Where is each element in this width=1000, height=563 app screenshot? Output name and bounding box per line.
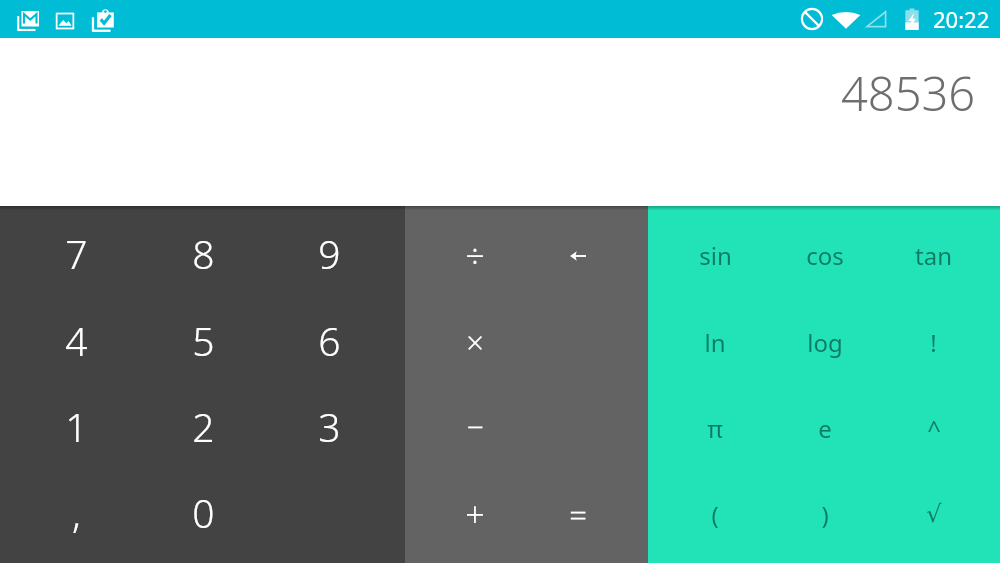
staticText: 9 (318, 227, 341, 280)
button[interactable]: , (13, 469, 140, 555)
button[interactable]: − (424, 383, 526, 469)
other: Gmail notification (16, 8, 41, 33)
button[interactable]: ÷ (424, 212, 526, 299)
button[interactable]: ln (660, 299, 770, 385)
staticText: 4 (65, 314, 88, 367)
staticText: 6 (318, 314, 341, 367)
button[interactable]: sin (660, 212, 770, 299)
staticText: = (569, 493, 587, 535)
staticText: cos (806, 239, 844, 272)
staticText: 3 (318, 400, 341, 453)
staticText: ! (930, 326, 937, 359)
button[interactable]: ^ (879, 385, 988, 471)
staticText: − (466, 406, 484, 447)
button[interactable]: 1 (13, 383, 140, 469)
button[interactable]: 5 (140, 297, 266, 383)
button[interactable]: × (424, 299, 526, 385)
staticText: √ (926, 500, 942, 528)
staticText: sin (699, 239, 732, 272)
other: Battery charging (903, 7, 921, 32)
staticText: ) (821, 498, 829, 531)
staticText: ^ (927, 412, 941, 445)
button[interactable]: 7 (13, 210, 140, 297)
staticText: π (707, 412, 723, 445)
staticText: ln (704, 326, 726, 359)
other: Photos notification (54, 10, 76, 32)
button[interactable]: 8 (140, 210, 266, 297)
staticText: 5 (192, 314, 215, 367)
staticText: ÷ (465, 233, 485, 279)
staticText: tan (915, 239, 952, 272)
staticText: , (72, 486, 81, 539)
staticText: 1 (65, 400, 88, 453)
staticText: 8 (192, 227, 215, 280)
button[interactable]: Backspace (526, 212, 629, 299)
other: Tasks notification (90, 7, 117, 34)
staticText: e (818, 412, 832, 445)
other: Do not disturb (800, 7, 824, 31)
other: Mobile signal (864, 7, 888, 31)
button[interactable]: log (770, 299, 879, 385)
button[interactable]: tan (879, 212, 988, 299)
button[interactable]: π (660, 385, 770, 471)
button[interactable]: ( (660, 471, 770, 557)
button[interactable]: ) (770, 471, 879, 557)
staticText: 20:22 (933, 4, 990, 34)
button[interactable]: e (770, 385, 879, 471)
button[interactable]: 2 (140, 383, 266, 469)
staticText: 0 (192, 486, 215, 539)
staticText: log (807, 326, 843, 359)
button[interactable]: = (526, 471, 629, 557)
button[interactable]: 9 (266, 210, 392, 297)
staticText: 48536 (841, 61, 976, 125)
staticText: ( (711, 498, 719, 531)
other: Wi-Fi (831, 8, 861, 30)
staticText: 2 (192, 400, 215, 453)
button[interactable]: 6 (266, 297, 392, 383)
button[interactable]: 4 (13, 297, 140, 383)
button[interactable]: cos (770, 212, 879, 299)
button[interactable]: ! (879, 299, 988, 385)
staticText: + (465, 491, 485, 537)
staticText: 7 (65, 227, 88, 280)
staticText: × (466, 321, 484, 363)
button[interactable]: √ (879, 471, 988, 557)
button[interactable]: 3 (266, 383, 392, 469)
button[interactable]: + (424, 471, 526, 557)
button[interactable]: 0 (140, 469, 266, 555)
